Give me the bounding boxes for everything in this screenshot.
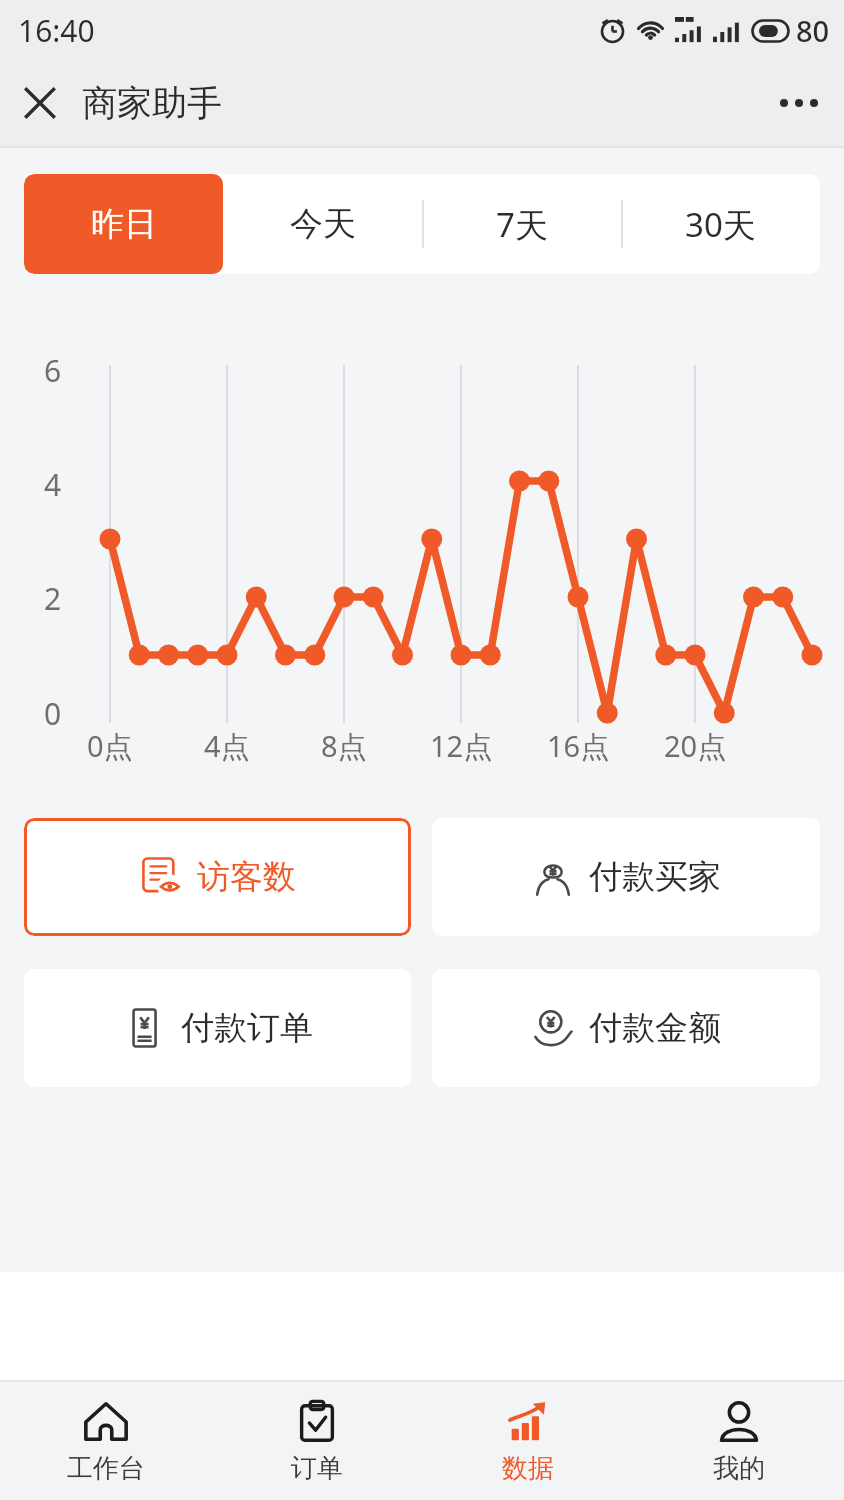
button[interactable]: 付款订单 <box>24 969 411 1087</box>
staticText: 2 <box>44 578 62 619</box>
staticText: 6 <box>44 350 62 391</box>
button[interactable]: Close <box>12 75 68 131</box>
staticText: 今天 <box>290 203 356 245</box>
staticText: 工作台 <box>67 1452 145 1485</box>
button[interactable]: 付款金额 <box>432 969 820 1087</box>
staticText: 订单 <box>291 1452 343 1485</box>
staticText: 访客数 <box>197 856 296 898</box>
staticText: 80 <box>796 11 830 50</box>
button[interactable]: More options <box>768 72 830 134</box>
button[interactable]: 工作台 <box>0 1382 211 1500</box>
button[interactable]: 数据 <box>422 1382 633 1500</box>
staticText: 数据 <box>502 1452 554 1485</box>
staticText: 4 <box>44 464 62 505</box>
staticText: 商家助手 <box>82 81 222 125</box>
button[interactable]: 7天 <box>422 174 621 274</box>
button[interactable]: 付款买家 <box>432 818 820 936</box>
staticText: 8点 <box>321 726 367 766</box>
button[interactable]: 访客数 <box>24 818 411 936</box>
staticText: 0 <box>44 693 62 734</box>
staticText: 16点 <box>547 726 610 766</box>
staticText: 20点 <box>664 726 727 766</box>
staticText: 昨日 <box>91 203 157 245</box>
staticText: 0点 <box>87 726 133 766</box>
staticText: 12点 <box>430 726 493 766</box>
button[interactable]: 今天 <box>223 174 422 274</box>
staticText: 我的 <box>713 1452 765 1485</box>
button[interactable]: 我的 <box>633 1382 844 1500</box>
staticText: 30天 <box>685 202 756 247</box>
staticText: 付款金额 <box>589 1007 721 1049</box>
button[interactable]: 昨日 <box>24 174 223 274</box>
staticText: 7天 <box>496 202 548 247</box>
button[interactable]: 30天 <box>621 174 820 274</box>
staticText: 4点 <box>204 726 250 766</box>
staticText: 付款订单 <box>181 1007 313 1049</box>
staticText: 16:40 <box>18 10 95 51</box>
staticText: 付款买家 <box>589 856 721 898</box>
button[interactable]: 订单 <box>211 1382 422 1500</box>
